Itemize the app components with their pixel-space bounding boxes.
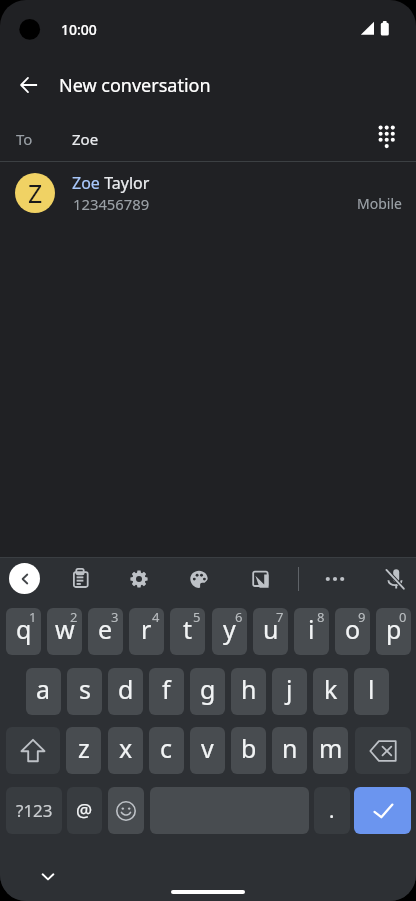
staticText: Zoe (72, 172, 100, 194)
staticText: b (241, 731, 257, 765)
button[interactable]: k (313, 668, 348, 715)
staticText: t (183, 612, 193, 646)
staticText: 10:00 (61, 20, 97, 39)
staticText: i (308, 612, 315, 646)
staticText: 2 (70, 608, 78, 626)
staticText: e (98, 612, 113, 646)
staticText: g (200, 672, 216, 706)
button[interactable]: Dialpad (364, 113, 412, 161)
staticText: k (324, 672, 338, 706)
staticText: 3 (111, 608, 119, 626)
staticText: ?123 (16, 799, 53, 822)
staticText: 5 (193, 608, 201, 626)
button[interactable]: t (170, 608, 205, 655)
button[interactable]: Microphone off (378, 562, 412, 596)
button[interactable]: x (108, 727, 143, 774)
staticText: 7 (276, 608, 284, 626)
button[interactable]: v (190, 727, 225, 774)
staticText: w (55, 612, 75, 646)
button[interactable]: r (129, 608, 164, 655)
button[interactable]: h (231, 668, 266, 715)
button[interactable]: y (212, 608, 247, 655)
button[interactable]: Back (5, 61, 53, 109)
button[interactable]: Shift (6, 727, 60, 774)
button[interactable]: Send (354, 787, 411, 834)
staticText: 9 (358, 608, 366, 626)
staticText: Zoe (72, 129, 99, 149)
staticText: @ (76, 798, 93, 823)
button[interactable]: m (313, 727, 348, 774)
staticText: 6 (235, 608, 243, 626)
button[interactable]: More options (318, 562, 352, 596)
staticText: 8 (317, 608, 325, 626)
staticText: o (345, 612, 361, 646)
button[interactable]: j (272, 668, 307, 715)
button[interactable]: w (47, 608, 82, 655)
button[interactable]: ?123 (6, 787, 62, 834)
staticText: 0 (399, 608, 407, 626)
staticText: j (286, 672, 293, 706)
button[interactable]: Theme (182, 562, 216, 596)
button[interactable]: @ (67, 787, 102, 834)
button[interactable]: Z (0, 162, 416, 222)
button[interactable]: One-handed mode (243, 562, 277, 596)
staticText: x (119, 731, 133, 765)
staticText: d (118, 672, 134, 706)
button[interactable]: n (272, 727, 307, 774)
staticText: New conversation (59, 73, 211, 98)
button[interactable]: Hide keyboard (26, 855, 70, 899)
staticText: 4 (152, 608, 160, 626)
staticText: v (201, 731, 214, 765)
button[interactable]: e (88, 608, 123, 655)
button[interactable]: f (149, 668, 184, 715)
staticText: m (319, 731, 343, 765)
staticText: p (386, 612, 402, 646)
staticText: a (36, 672, 51, 706)
button[interactable]: . (314, 787, 350, 834)
staticText: Mobile (357, 194, 402, 213)
button[interactable]: u (253, 608, 288, 655)
button[interactable]: Emoji (108, 787, 144, 834)
button[interactable]: b (231, 727, 266, 774)
staticText: 123456789 (73, 194, 150, 214)
staticText: . (329, 797, 335, 824)
button[interactable]: q (6, 608, 41, 655)
button[interactable]: s (67, 668, 102, 715)
staticText: h (241, 672, 257, 706)
button[interactable]: g (190, 668, 225, 715)
staticText: l (368, 672, 375, 706)
button[interactable]: Expand toolbar (9, 563, 40, 594)
staticText: y (223, 612, 236, 646)
button[interactable]: o (335, 608, 370, 655)
button[interactable]: Clipboard (63, 562, 97, 596)
staticText: u (263, 612, 279, 646)
staticText: c (160, 731, 173, 765)
staticText: q (16, 612, 32, 646)
button[interactable]: Settings (122, 562, 156, 596)
button[interactable]: p (376, 608, 411, 655)
button[interactable]: d (108, 668, 143, 715)
staticText: Z (28, 176, 43, 210)
staticText: 1 (29, 608, 37, 626)
button[interactable]: Backspace (355, 727, 411, 774)
button[interactable]: i (294, 608, 329, 655)
button[interactable]: l (354, 668, 389, 715)
staticText: To (16, 129, 33, 149)
button[interactable]: z (66, 727, 101, 774)
staticText: f (162, 672, 171, 706)
button[interactable]: c (149, 727, 184, 774)
staticText: Taylor (100, 172, 150, 194)
button[interactable]: a (26, 668, 61, 715)
staticText: s (79, 672, 91, 706)
staticText: z (78, 731, 90, 765)
staticText: n (282, 731, 298, 765)
staticText: r (141, 612, 152, 646)
